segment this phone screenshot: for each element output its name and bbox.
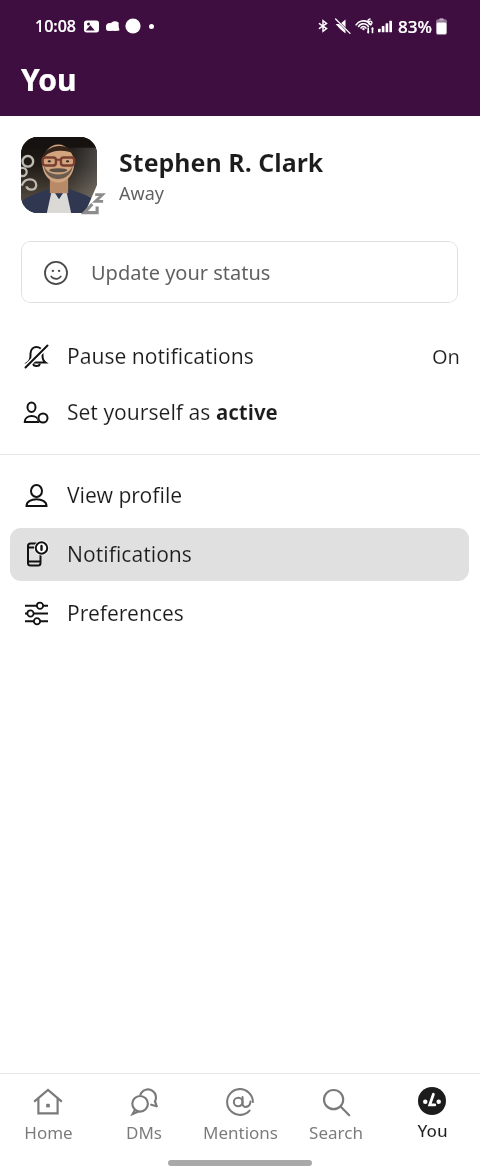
button[interactable]: Update your status <box>21 241 458 303</box>
staticText: Stephen R. Clark <box>119 145 324 179</box>
staticText: active <box>216 398 278 426</box>
staticText: Notifications <box>67 540 192 569</box>
staticText: DMs <box>126 1121 162 1144</box>
button[interactable]: Search <box>288 1080 384 1146</box>
button[interactable]: Notifications <box>10 528 469 581</box>
staticText: You <box>21 59 77 100</box>
staticText: Pause notifications <box>67 342 254 371</box>
button[interactable]: Stephen R. Clark <box>0 137 480 213</box>
button[interactable]: Set yourself as <box>10 384 469 440</box>
staticText: Mentions <box>203 1121 278 1144</box>
button[interactable]: Pause notifications <box>10 328 469 384</box>
staticText: 10:08 <box>35 15 76 37</box>
staticText: Search <box>309 1121 363 1144</box>
staticText: View profile <box>67 481 183 510</box>
button[interactable]: Preferences <box>10 587 469 640</box>
button[interactable]: Home <box>0 1080 96 1146</box>
button[interactable]: DMs <box>96 1080 192 1146</box>
staticText: 83% <box>398 15 432 38</box>
button[interactable]: You <box>384 1080 480 1146</box>
staticText: On <box>432 343 460 370</box>
staticText: You <box>417 1119 448 1142</box>
button[interactable]: Mentions <box>192 1080 288 1146</box>
staticText: Update your status <box>91 259 271 286</box>
staticText: Home <box>24 1121 73 1144</box>
button[interactable]: View profile <box>10 468 469 522</box>
staticText: Set yourself as <box>67 398 216 427</box>
staticText: Away <box>119 181 164 206</box>
staticText: Preferences <box>67 599 184 628</box>
